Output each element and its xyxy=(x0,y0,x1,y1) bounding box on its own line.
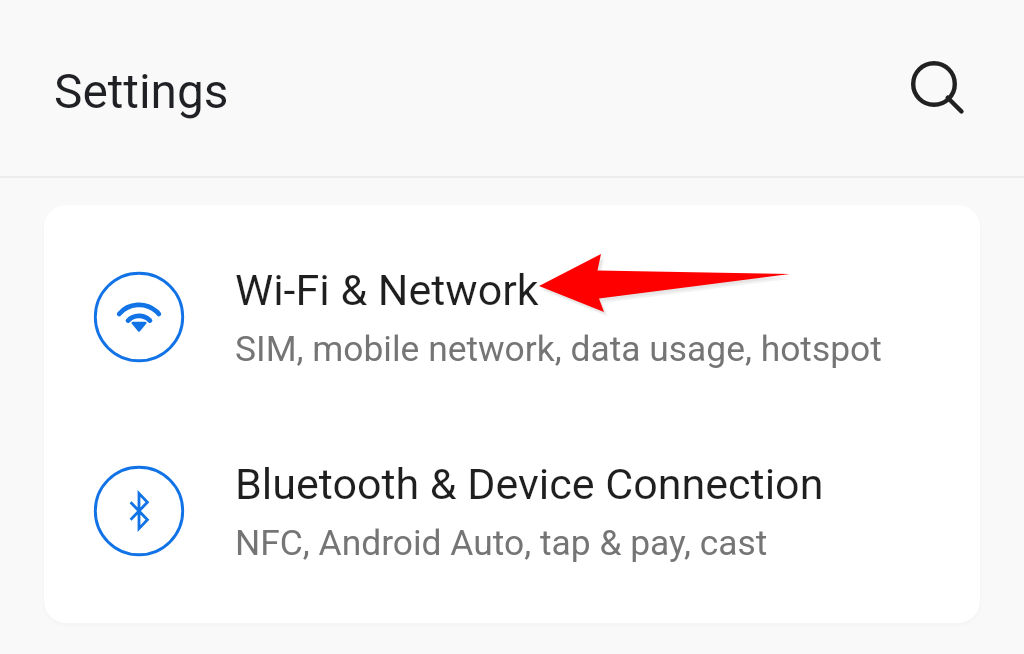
button[interactable]: Bluetooth & Device Connection xyxy=(44,412,980,623)
staticText: SIM, mobile network, data usage, hotspot xyxy=(235,328,882,369)
staticText: NFC, Android Auto, tap & pay, cast xyxy=(235,522,768,563)
staticText: Settings xyxy=(54,64,229,120)
button[interactable]: Wi-Fi & Network xyxy=(44,205,980,412)
button[interactable]: Search xyxy=(895,47,979,131)
staticText: Bluetooth & Device Connection xyxy=(235,459,824,509)
staticText: Wi-Fi & Network xyxy=(235,265,539,315)
